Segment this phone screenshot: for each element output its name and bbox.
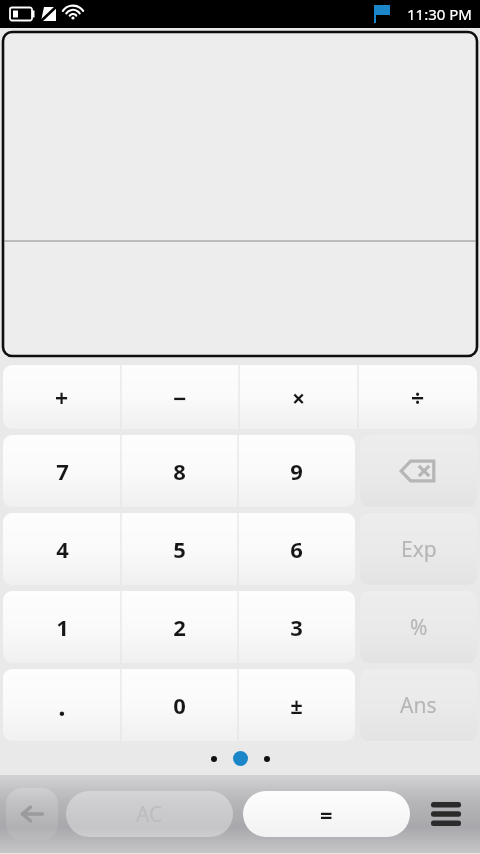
- staticText: 7: [56, 456, 69, 486]
- staticText: 2: [173, 612, 186, 642]
- staticText: −: [173, 382, 187, 413]
- button[interactable]: 5: [121, 513, 238, 585]
- staticText: 6: [290, 534, 303, 564]
- button[interactable]: 4: [3, 513, 121, 585]
- button[interactable]: ÷: [358, 365, 477, 429]
- button[interactable]: %: [360, 591, 477, 663]
- button[interactable]: Menu: [418, 786, 474, 842]
- staticText: 11:30 PM: [407, 4, 472, 24]
- button[interactable]: Back: [6, 788, 58, 840]
- staticText: 5: [173, 534, 186, 564]
- button[interactable]: ×: [239, 365, 358, 429]
- staticText: %: [410, 613, 428, 642]
- button[interactable]: .: [3, 669, 121, 741]
- staticText: 1: [56, 612, 69, 642]
- button[interactable]: 7: [3, 435, 121, 507]
- staticText: 3: [290, 612, 303, 642]
- staticText: ±: [290, 690, 303, 720]
- staticText: AC: [136, 800, 163, 829]
- staticText: Exp: [401, 535, 437, 564]
- staticText: 9: [290, 456, 303, 486]
- button[interactable]: 0: [121, 669, 238, 741]
- staticText: .: [58, 688, 66, 723]
- button[interactable]: 8: [121, 435, 238, 507]
- button[interactable]: Ans: [360, 669, 477, 741]
- staticText: 0: [173, 690, 186, 720]
- button[interactable]: 1: [3, 591, 121, 663]
- button[interactable]: Exp: [360, 513, 477, 585]
- button[interactable]: 6: [238, 513, 355, 585]
- staticText: =: [320, 799, 333, 829]
- button[interactable]: 9: [238, 435, 355, 507]
- button[interactable]: +: [3, 365, 121, 429]
- button[interactable]: =: [243, 791, 410, 837]
- staticText: ÷: [411, 382, 425, 413]
- button[interactable]: Backspace: [360, 435, 477, 507]
- staticText: Ans: [400, 691, 437, 720]
- button[interactable]: ±: [238, 669, 355, 741]
- button[interactable]: −: [121, 365, 239, 429]
- button[interactable]: 2: [121, 591, 238, 663]
- staticText: 8: [173, 456, 186, 486]
- staticText: ×: [292, 382, 306, 413]
- button[interactable]: 3: [238, 591, 355, 663]
- staticText: 4: [56, 534, 69, 564]
- staticText: +: [55, 382, 69, 413]
- button[interactable]: AC: [66, 791, 233, 837]
